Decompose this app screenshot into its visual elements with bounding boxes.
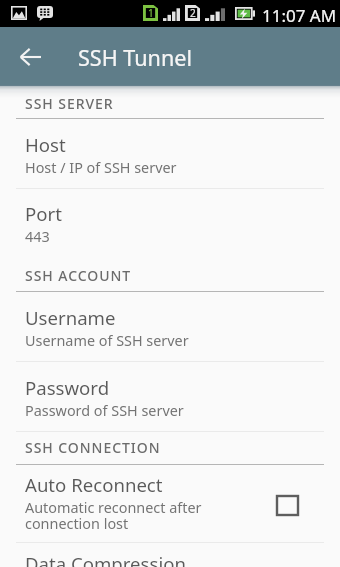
button[interactable]: Password — [0, 362, 340, 432]
staticText: Auto Reconnect — [25, 472, 163, 497]
button[interactable]: Username — [0, 292, 340, 362]
staticText: Host — [25, 132, 66, 157]
button[interactable]: Navigate up — [0, 27, 58, 86]
staticText: SSH SERVER — [25, 94, 114, 113]
staticText: Password of SSH server — [25, 401, 184, 421]
staticText: Username of SSH server — [25, 331, 189, 351]
staticText: Automatic reconnect after connection los… — [25, 498, 202, 533]
button[interactable]: Auto Reconnect — [0, 465, 340, 543]
staticText: 1 — [148, 6, 154, 20]
staticText: 2 — [190, 6, 196, 20]
button[interactable]: Port — [0, 189, 340, 259]
button[interactable]: Data Compression — [0, 543, 340, 567]
staticText: Password — [25, 375, 110, 400]
staticText: SSH CONNECTION — [25, 438, 161, 457]
staticText: SSH ACCOUNT — [25, 266, 132, 285]
button[interactable]: Auto Reconnect — [277, 496, 298, 515]
staticText: 443 — [25, 227, 50, 247]
staticText: Data Compression — [25, 551, 186, 567]
staticText: Username — [25, 305, 116, 330]
staticText: Port — [25, 201, 62, 226]
staticText: 11:07 AM — [262, 4, 337, 27]
staticText: Host / IP of SSH server — [25, 158, 177, 178]
button[interactable]: Host — [0, 119, 340, 189]
staticText: SSH Tunnel — [78, 43, 193, 72]
